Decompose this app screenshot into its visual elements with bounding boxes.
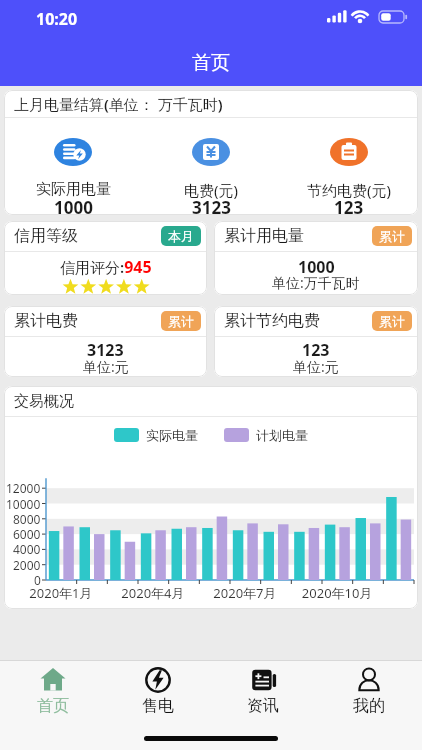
- staticText: 单位:元: [83, 357, 129, 376]
- button[interactable]: 首页: [0, 666, 105, 716]
- staticText: 首页: [192, 51, 230, 75]
- staticText: 电费(元): [184, 180, 239, 200]
- staticText: 10:20: [36, 8, 78, 30]
- staticText: 3123: [87, 339, 124, 361]
- staticText: 计划电量: [256, 427, 308, 443]
- button[interactable]: 累计节约电费: [214, 306, 418, 377]
- staticText: 累计: [168, 313, 194, 329]
- button[interactable]: 节约电费(元): [280, 138, 418, 214]
- staticText: 上月电量结算(单位： 万千瓦时): [14, 94, 223, 114]
- staticText: 我的: [353, 696, 385, 716]
- staticText: 信用等级: [14, 226, 78, 246]
- staticText: 累计电费: [14, 311, 78, 331]
- button[interactable]: 资讯: [210, 666, 316, 716]
- button[interactable]: 实际用电量: [4, 138, 142, 214]
- staticText: 首页: [37, 696, 69, 716]
- staticText: 资讯: [247, 696, 279, 716]
- staticText: 123: [334, 196, 364, 215]
- staticText: 1000: [54, 196, 93, 215]
- staticText: 节约电费(元): [307, 180, 392, 200]
- staticText: 3123: [192, 196, 231, 215]
- staticText: 交易概况: [14, 392, 74, 411]
- staticText: 123: [302, 339, 330, 361]
- button[interactable]: 累计用电量: [214, 221, 418, 295]
- staticText: 信用评分:945: [60, 256, 152, 278]
- staticText: 单位:万千瓦时: [272, 273, 360, 292]
- staticText: 累计: [379, 228, 405, 244]
- staticText: 累计用电量: [224, 226, 304, 246]
- staticText: 实际电量: [146, 427, 198, 443]
- button[interactable]: 信用等级: [4, 221, 207, 295]
- staticText: 累计: [379, 313, 405, 329]
- staticText: 累计节约电费: [224, 311, 320, 331]
- button[interactable]: 售电: [105, 666, 210, 716]
- staticText: 实际用电量: [36, 180, 111, 199]
- button[interactable]: 我的: [316, 666, 422, 716]
- staticText: 本月: [168, 228, 194, 244]
- button[interactable]: 电费(元): [142, 138, 280, 214]
- staticText: 售电: [142, 696, 174, 716]
- staticText: 1000: [298, 256, 335, 278]
- button[interactable]: 累计电费: [4, 306, 207, 377]
- staticText: 单位:元: [293, 357, 339, 376]
